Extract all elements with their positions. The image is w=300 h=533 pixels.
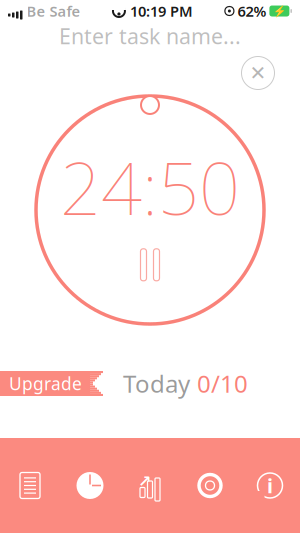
button[interactable]: Close	[238, 53, 278, 93]
staticText: i	[267, 472, 273, 499]
staticText: Be Safe	[26, 1, 80, 21]
staticText: 10:19 PM	[130, 1, 193, 21]
staticText: Upgrade	[9, 372, 82, 395]
button[interactable]: Upgrade	[0, 371, 103, 396]
staticText: 24:50	[60, 139, 240, 235]
button[interactable]: Pause timer	[0, 93, 300, 327]
button[interactable]: Statistics	[120, 438, 180, 533]
staticText: Today	[123, 368, 190, 399]
button[interactable]: Timer	[60, 438, 120, 533]
staticText: ✕	[249, 62, 266, 84]
staticText: ⚡	[273, 5, 286, 17]
button[interactable]: Settings	[180, 438, 240, 533]
staticText: Enter task name...	[59, 22, 241, 50]
button[interactable]: Tasks	[0, 438, 60, 533]
staticText: 62%	[237, 1, 266, 21]
button[interactable]: Info	[240, 438, 300, 533]
staticText: ↗	[138, 472, 151, 491]
staticText: 0/10	[197, 368, 248, 399]
